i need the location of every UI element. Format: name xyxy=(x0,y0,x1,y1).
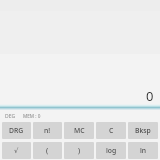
button[interactable]: log xyxy=(96,142,126,159)
button[interactable]: ( xyxy=(33,142,62,159)
button[interactable]: ln xyxy=(128,142,158,159)
staticText: DRG xyxy=(9,126,24,135)
button[interactable]: n! xyxy=(33,122,62,139)
button[interactable]: MC xyxy=(64,122,94,139)
staticText: log xyxy=(106,146,117,155)
staticText: n! xyxy=(44,126,51,135)
button[interactable]: Bksp xyxy=(128,122,158,139)
staticText: MEM : 0 xyxy=(23,113,41,119)
staticText: ln xyxy=(140,146,147,155)
staticText: ) xyxy=(78,146,81,155)
staticText: √ xyxy=(14,147,19,155)
button[interactable]: C xyxy=(96,122,126,139)
staticText: 0 xyxy=(146,87,154,105)
staticText: MC xyxy=(74,126,85,135)
button[interactable]: ) xyxy=(64,142,94,159)
button[interactable]: 0 xyxy=(0,0,160,105)
button[interactable]: DRG xyxy=(2,122,31,139)
staticText: ( xyxy=(46,146,49,155)
button[interactable]: √ xyxy=(2,142,31,159)
staticText: Bksp xyxy=(135,126,151,135)
button[interactable]: DEG xyxy=(5,113,16,120)
staticText: C xyxy=(109,126,114,135)
